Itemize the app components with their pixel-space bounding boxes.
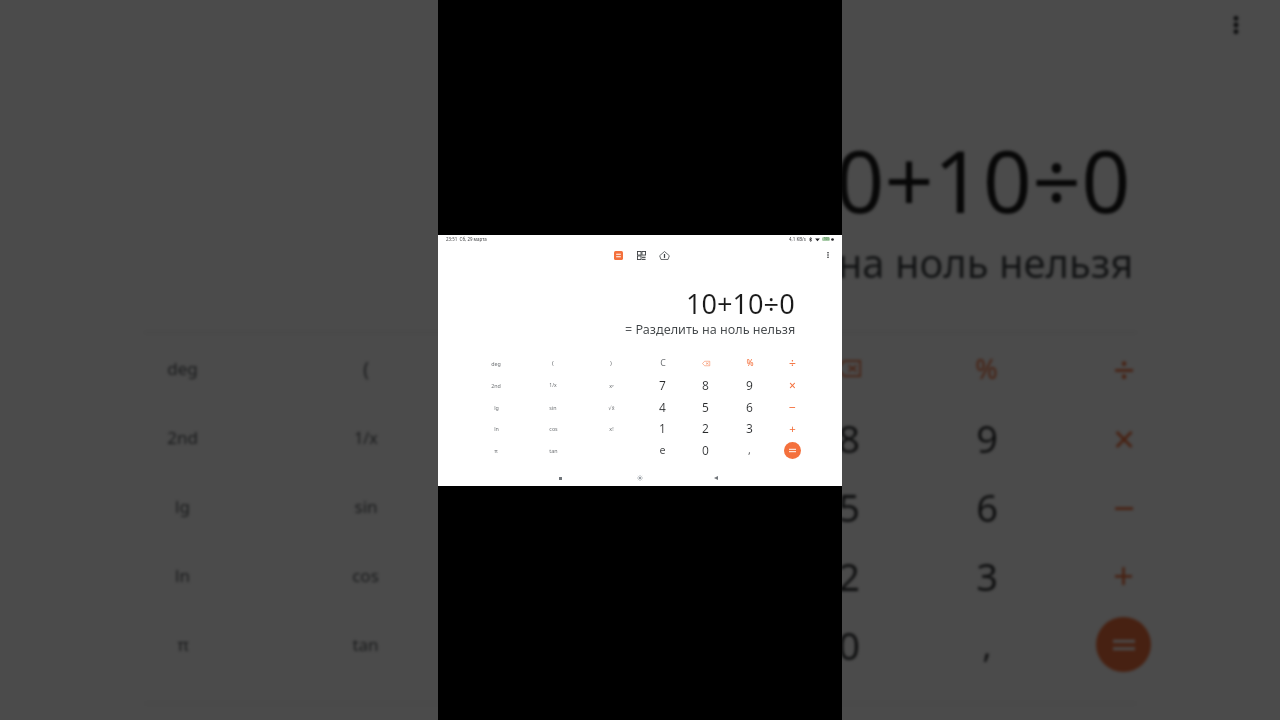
staticText: 1 — [659, 420, 666, 436]
button[interactable]: Back — [709, 471, 723, 485]
button[interactable]: x! — [582, 417, 640, 439]
button[interactable]: 0 — [684, 439, 727, 461]
staticText: ÷ — [789, 355, 796, 371]
staticText: 4 — [659, 399, 666, 415]
staticText: % — [746, 357, 754, 369]
button[interactable]: lg — [467, 396, 525, 418]
staticText: 7 — [701, 412, 723, 464]
staticText: ln — [494, 425, 499, 432]
staticText: x! — [609, 425, 614, 432]
staticText: √x̄ — [608, 404, 615, 411]
staticText: lg — [175, 495, 190, 518]
button[interactable]: Finance — [656, 247, 672, 263]
button[interactable]: Unit converter — [633, 247, 649, 263]
button[interactable]: tan — [524, 439, 582, 461]
button[interactable]: deg — [467, 352, 525, 374]
button[interactable]: 7 — [641, 374, 684, 396]
button[interactable]: Equals — [771, 439, 814, 461]
staticText: 5 — [702, 399, 709, 415]
button[interactable]: 2 — [684, 417, 727, 439]
staticText: 8 — [838, 412, 860, 464]
staticText: cos — [549, 425, 558, 432]
button[interactable]: xʸ — [582, 374, 640, 396]
button[interactable]: Backspace — [684, 352, 727, 374]
staticText: 2nd — [167, 426, 198, 449]
button[interactable]: × — [771, 374, 814, 396]
button[interactable]: More options — [820, 247, 836, 263]
staticText: ( — [363, 356, 369, 382]
staticText: 23:51 Сб, 29 марта — [446, 236, 487, 242]
button[interactable]: sin — [524, 396, 582, 418]
button[interactable]: cos — [524, 417, 582, 439]
button[interactable]: − — [771, 396, 814, 418]
staticText: 6 — [746, 399, 753, 415]
staticText: deg — [167, 357, 198, 380]
staticText: + — [1113, 551, 1134, 600]
button[interactable]: Recent apps — [553, 471, 567, 485]
button[interactable]: % — [728, 352, 771, 374]
staticText: xʸ — [609, 382, 614, 389]
staticText: 3 — [976, 550, 998, 602]
button[interactable]: 9 — [728, 374, 771, 396]
button[interactable]: 5 — [684, 396, 727, 418]
staticText: 7 — [659, 377, 666, 393]
button[interactable]: √x̄ — [582, 396, 640, 418]
staticText: tan — [549, 447, 558, 454]
staticText: C — [660, 357, 666, 369]
staticText: 2nd — [491, 382, 501, 389]
button[interactable]: ) — [582, 352, 640, 374]
button[interactable]: ln — [467, 417, 525, 439]
staticText: 0 — [838, 619, 860, 671]
staticText: 2 — [702, 420, 709, 436]
staticText: 8 — [702, 377, 709, 393]
button[interactable]: , — [728, 439, 771, 461]
staticText: tan — [352, 633, 379, 656]
staticText: + — [789, 421, 796, 436]
staticText: 100 — [824, 237, 829, 241]
staticText: − — [789, 399, 796, 415]
button[interactable]: 8 — [684, 374, 727, 396]
staticText: 3 — [746, 420, 753, 436]
button[interactable]: Home — [633, 471, 647, 485]
button[interactable]: + — [771, 417, 814, 439]
button[interactable]: ( — [524, 352, 582, 374]
button[interactable]: C — [641, 352, 684, 374]
staticText: 4 — [701, 481, 723, 533]
button[interactable]: 3 — [728, 417, 771, 439]
staticText: ÷ — [1113, 343, 1135, 395]
button[interactable]: 1/x — [524, 374, 582, 396]
staticText: ) — [610, 359, 612, 367]
staticText: × — [1113, 412, 1135, 464]
staticText: e — [659, 443, 666, 458]
button[interactable]: Calculator — [610, 247, 626, 263]
staticText: 4,1 KB/s — [789, 236, 806, 242]
staticText: % — [975, 350, 998, 387]
staticText: 0 — [702, 442, 709, 458]
button[interactable]: ÷ — [771, 352, 814, 374]
staticText: − — [1113, 481, 1135, 533]
staticText: 9 — [976, 412, 998, 464]
button[interactable]: 1 — [641, 417, 684, 439]
staticText: ( — [552, 359, 554, 367]
staticText: lg — [494, 404, 499, 411]
staticText: xʸ — [541, 426, 556, 449]
button[interactable]: 4 — [641, 396, 684, 418]
button[interactable]: e — [641, 439, 684, 461]
staticText: C — [703, 350, 721, 388]
staticText: deg — [491, 360, 501, 367]
staticText: 1/x — [549, 382, 557, 389]
staticText: cos — [352, 564, 379, 587]
staticText: × — [789, 377, 796, 393]
staticText: 10+10÷0 — [786, 121, 1131, 238]
button[interactable]: 6 — [728, 396, 771, 418]
staticText: , — [982, 622, 992, 668]
button[interactable]: 2nd — [467, 374, 525, 396]
staticText: , — [748, 443, 751, 458]
button[interactable]: π — [467, 439, 525, 461]
staticText: 10+10÷0 — [686, 285, 795, 322]
